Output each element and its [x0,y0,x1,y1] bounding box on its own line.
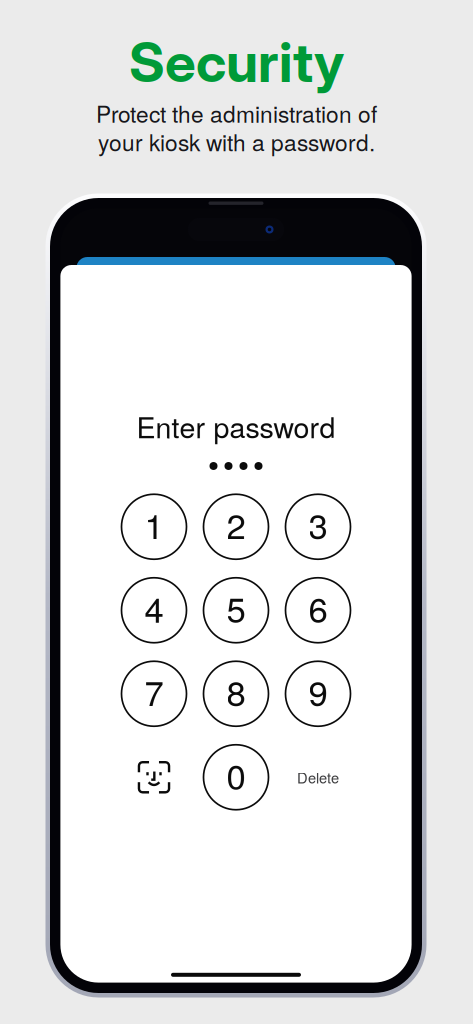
button[interactable]: Delete [285,745,350,810]
button[interactable]: 6 [285,578,350,643]
button[interactable]: 9 [285,661,350,726]
staticText: 4 [144,583,163,632]
button[interactable]: 3 [285,494,350,559]
staticText: 5 [226,583,245,632]
staticText: 9 [308,666,327,716]
button[interactable]: 1 [121,494,186,559]
staticText: Security [129,29,344,95]
button[interactable]: 8 [203,661,268,726]
button[interactable]: 5 [203,578,268,643]
staticText: 0 [226,750,245,799]
staticText: Protect the administration of [96,97,377,129]
button[interactable]: 4 [121,578,186,643]
button[interactable]: 7 [121,661,186,726]
staticText: 1 [144,499,163,549]
staticText: 7 [144,666,163,716]
staticText: Enter password [136,406,335,446]
staticText: Delete [297,767,339,788]
staticText: 2 [226,499,245,549]
button[interactable]: 0 [203,745,268,810]
staticText: 6 [308,583,327,632]
staticText: your kiosk with a password. [98,125,375,158]
staticText: 8 [226,666,245,716]
button[interactable]: 2 [203,494,268,559]
staticText: 3 [308,499,327,549]
button[interactable]: Unlock with Face ID [121,745,186,810]
